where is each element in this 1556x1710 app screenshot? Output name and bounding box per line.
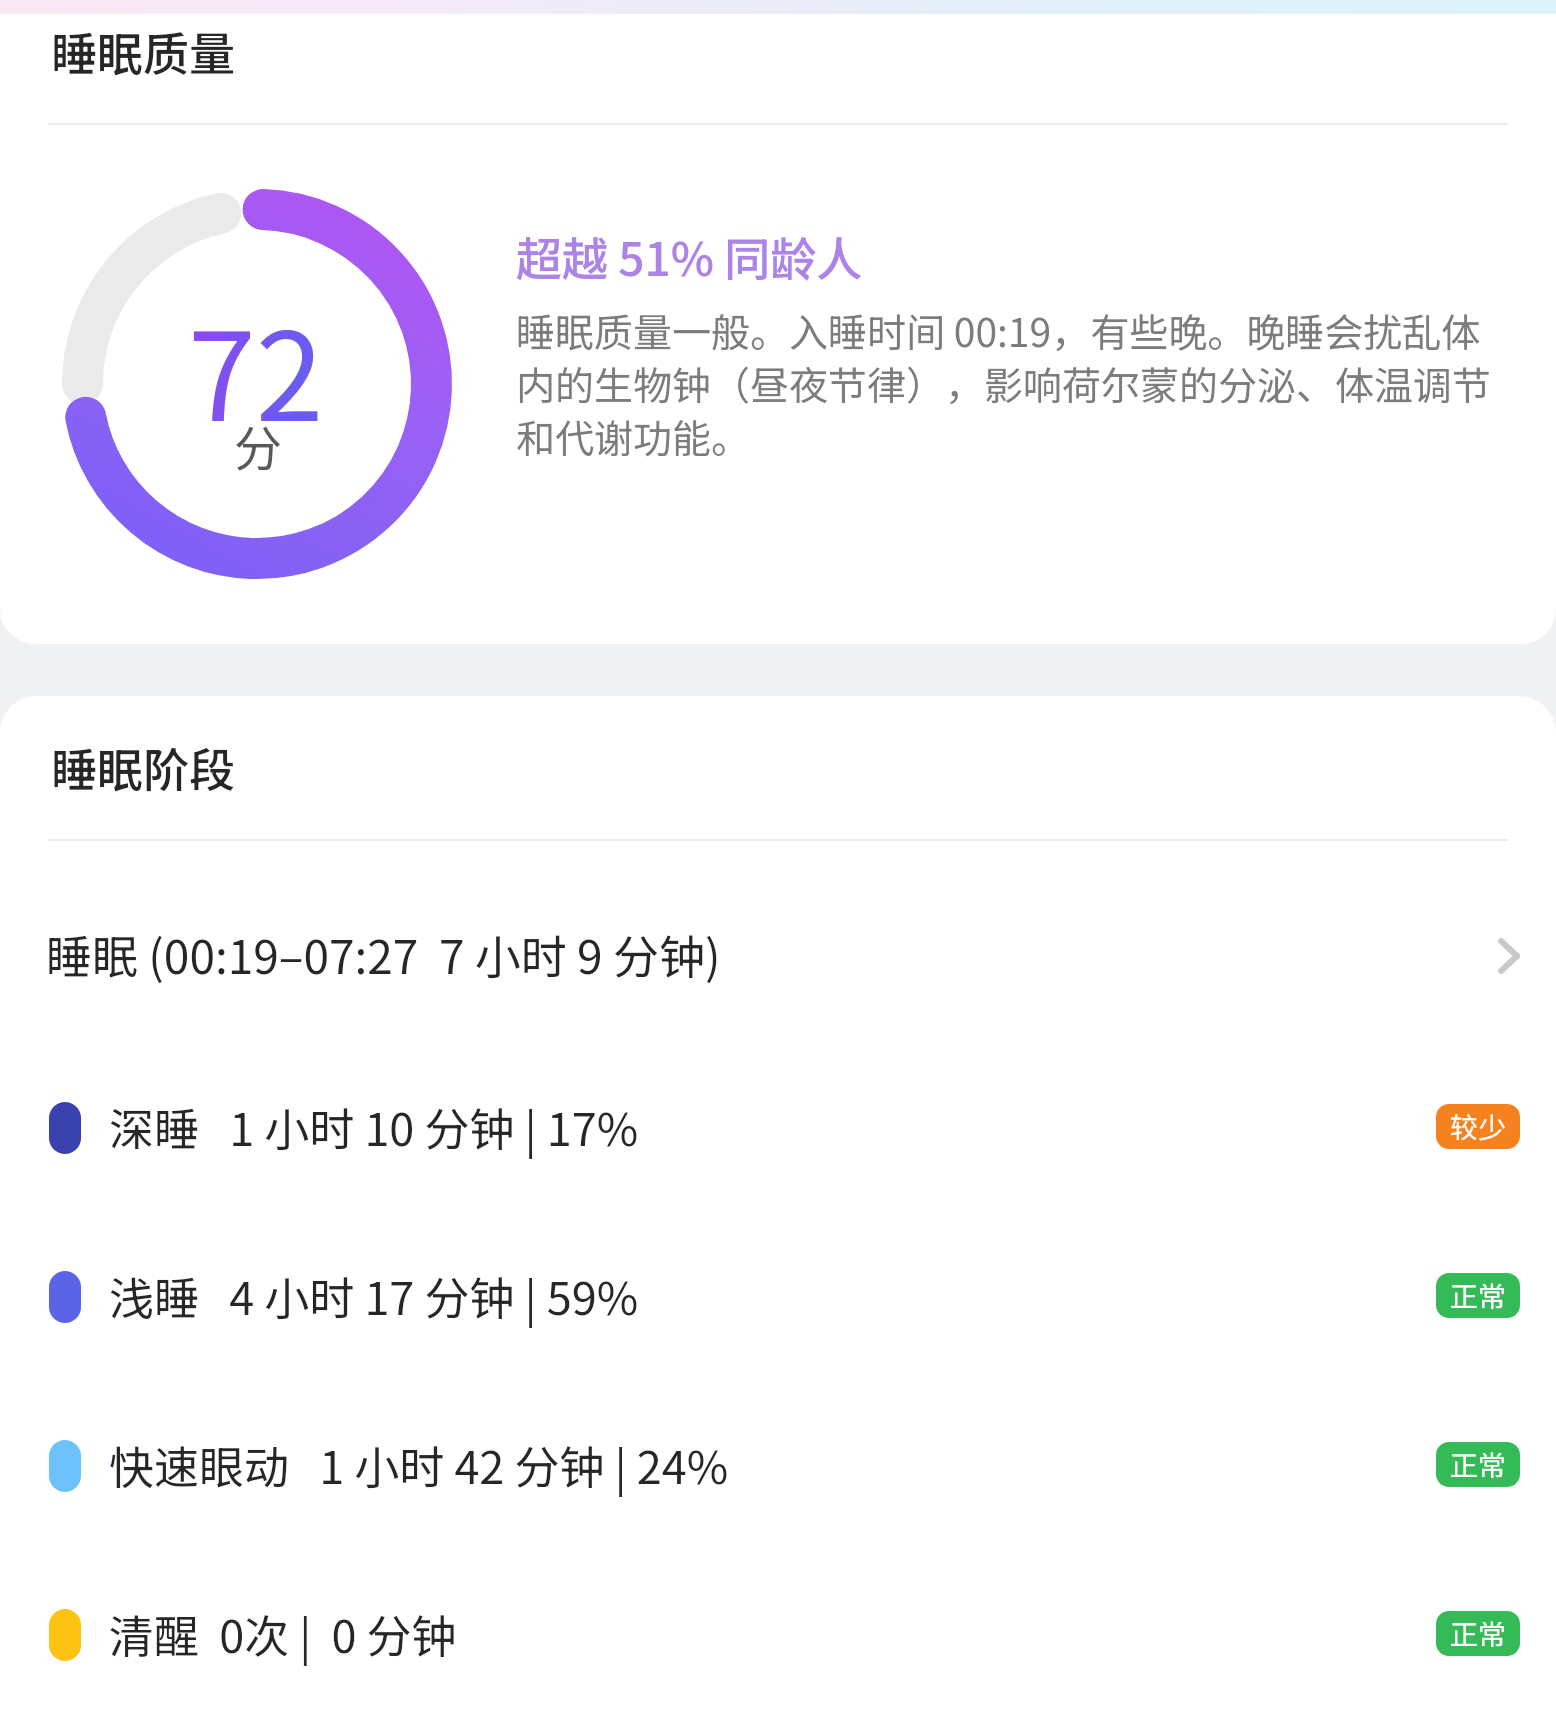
button[interactable]: 清醒 0次 | 0 分钟	[0, 1588, 1556, 1710]
other: 查看睡眠详情	[1498, 938, 1520, 974]
staticText: 分	[234, 410, 283, 480]
staticText: 较少	[1450, 1106, 1507, 1147]
staticText: 快速眼动 1 小时 42 分钟 | 24%	[109, 1432, 729, 1497]
staticText: 睡眠质量一般。入睡时间 00:19，有些晚。晚睡会扰乱体内的生物钟（昼夜节律），…	[516, 302, 1496, 465]
button[interactable]: 正常	[1436, 1442, 1520, 1487]
staticText: 正常	[1450, 1444, 1507, 1485]
button[interactable]: 浅睡 4 小时 17 分钟 | 59%	[0, 1250, 1556, 1419]
staticText: 深睡 1 小时 10 分钟 | 17%	[109, 1094, 639, 1159]
button[interactable]: 深睡 1 小时 10 分钟 | 17%	[0, 1081, 1556, 1250]
staticText: 清醒 0次 | 0 分钟	[109, 1601, 457, 1666]
staticText: 超越 51% 同龄人	[516, 223, 863, 290]
button[interactable]: 正常	[1436, 1273, 1520, 1318]
staticText: 72	[188, 279, 324, 456]
staticText: 睡眠阶段	[51, 734, 235, 801]
staticText: 正常	[1450, 1613, 1507, 1654]
staticText: 浅睡 4 小时 17 分钟 | 59%	[109, 1263, 639, 1328]
staticText: 睡眠 (00:19–07:27 7 小时 9 分钟)	[46, 921, 721, 988]
button[interactable]: 较少	[1436, 1104, 1520, 1149]
staticText: 正常	[1450, 1275, 1507, 1316]
button[interactable]: 睡眠 (00:19–07:27 7 小时 9 分钟)	[0, 872, 1556, 1000]
staticText: 睡眠质量	[51, 18, 235, 85]
button[interactable]: 正常	[1436, 1611, 1520, 1656]
button[interactable]: 快速眼动 1 小时 42 分钟 | 24%	[0, 1419, 1556, 1588]
